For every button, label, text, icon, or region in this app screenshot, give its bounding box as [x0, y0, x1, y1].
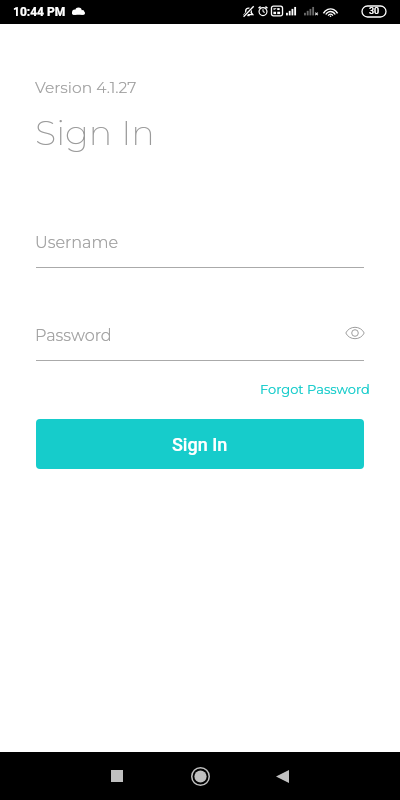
staticText: Version 4.1.27: [35, 78, 137, 97]
button[interactable]: Home: [176, 752, 224, 800]
staticText: Username: [35, 233, 119, 253]
button[interactable]: Back: [258, 752, 306, 800]
staticText: 10:44 PM: [13, 5, 66, 19]
button[interactable]: Recent apps: [93, 752, 141, 800]
button[interactable]: Show password: [341, 319, 369, 347]
button[interactable]: Forgot Password: [256, 378, 372, 400]
staticText: Sign In: [172, 434, 228, 455]
staticText: Sign In: [35, 111, 155, 154]
staticText: Password: [35, 326, 112, 346]
staticText: Forgot Password: [260, 381, 370, 397]
staticText: 30: [369, 6, 380, 17]
button[interactable]: Sign In: [36, 419, 364, 469]
